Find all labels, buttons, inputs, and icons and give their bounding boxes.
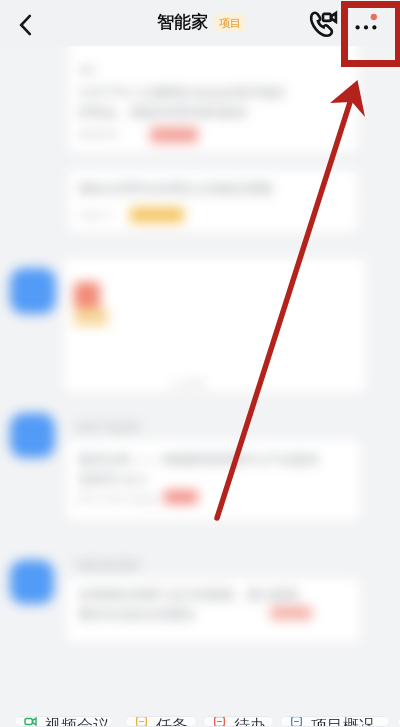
staticText: 说明书 V2.3 bbox=[78, 470, 147, 488]
staticText: 本周项目进度汇总已经更新，请大家查 bbox=[78, 586, 299, 602]
staticText: 待办 bbox=[234, 716, 266, 727]
staticText: 项目 bbox=[219, 16, 241, 30]
staticText: 项目概况 bbox=[311, 716, 375, 727]
button[interactable]: More options bbox=[345, 4, 387, 46]
button[interactable]: 文档 bbox=[397, 716, 400, 727]
button[interactable]: 项目概况 bbox=[280, 716, 390, 727]
button[interactable]: Back bbox=[6, 5, 46, 45]
staticText: 任务 bbox=[156, 716, 188, 727]
staticText: 请各位同学在本周五之前提交周报 bbox=[78, 180, 273, 196]
button[interactable]: 视频会议 bbox=[14, 716, 113, 727]
staticText: 评审会，请相关同学准时参加 bbox=[78, 104, 247, 120]
staticText: 今天下午三点整我们在会议室开项目 bbox=[78, 84, 286, 100]
staticText: 视频会议 bbox=[45, 716, 109, 727]
staticText: 需求文档 —— 智能家居控制中心产品需求 bbox=[78, 450, 319, 468]
staticText: 看并补充各自负责的 bbox=[78, 606, 195, 622]
button[interactable]: Video call bbox=[303, 4, 343, 44]
button[interactable]: 待办 bbox=[203, 716, 274, 727]
staticText: 智能家 bbox=[157, 12, 208, 33]
button[interactable]: 任务 bbox=[125, 716, 197, 727]
